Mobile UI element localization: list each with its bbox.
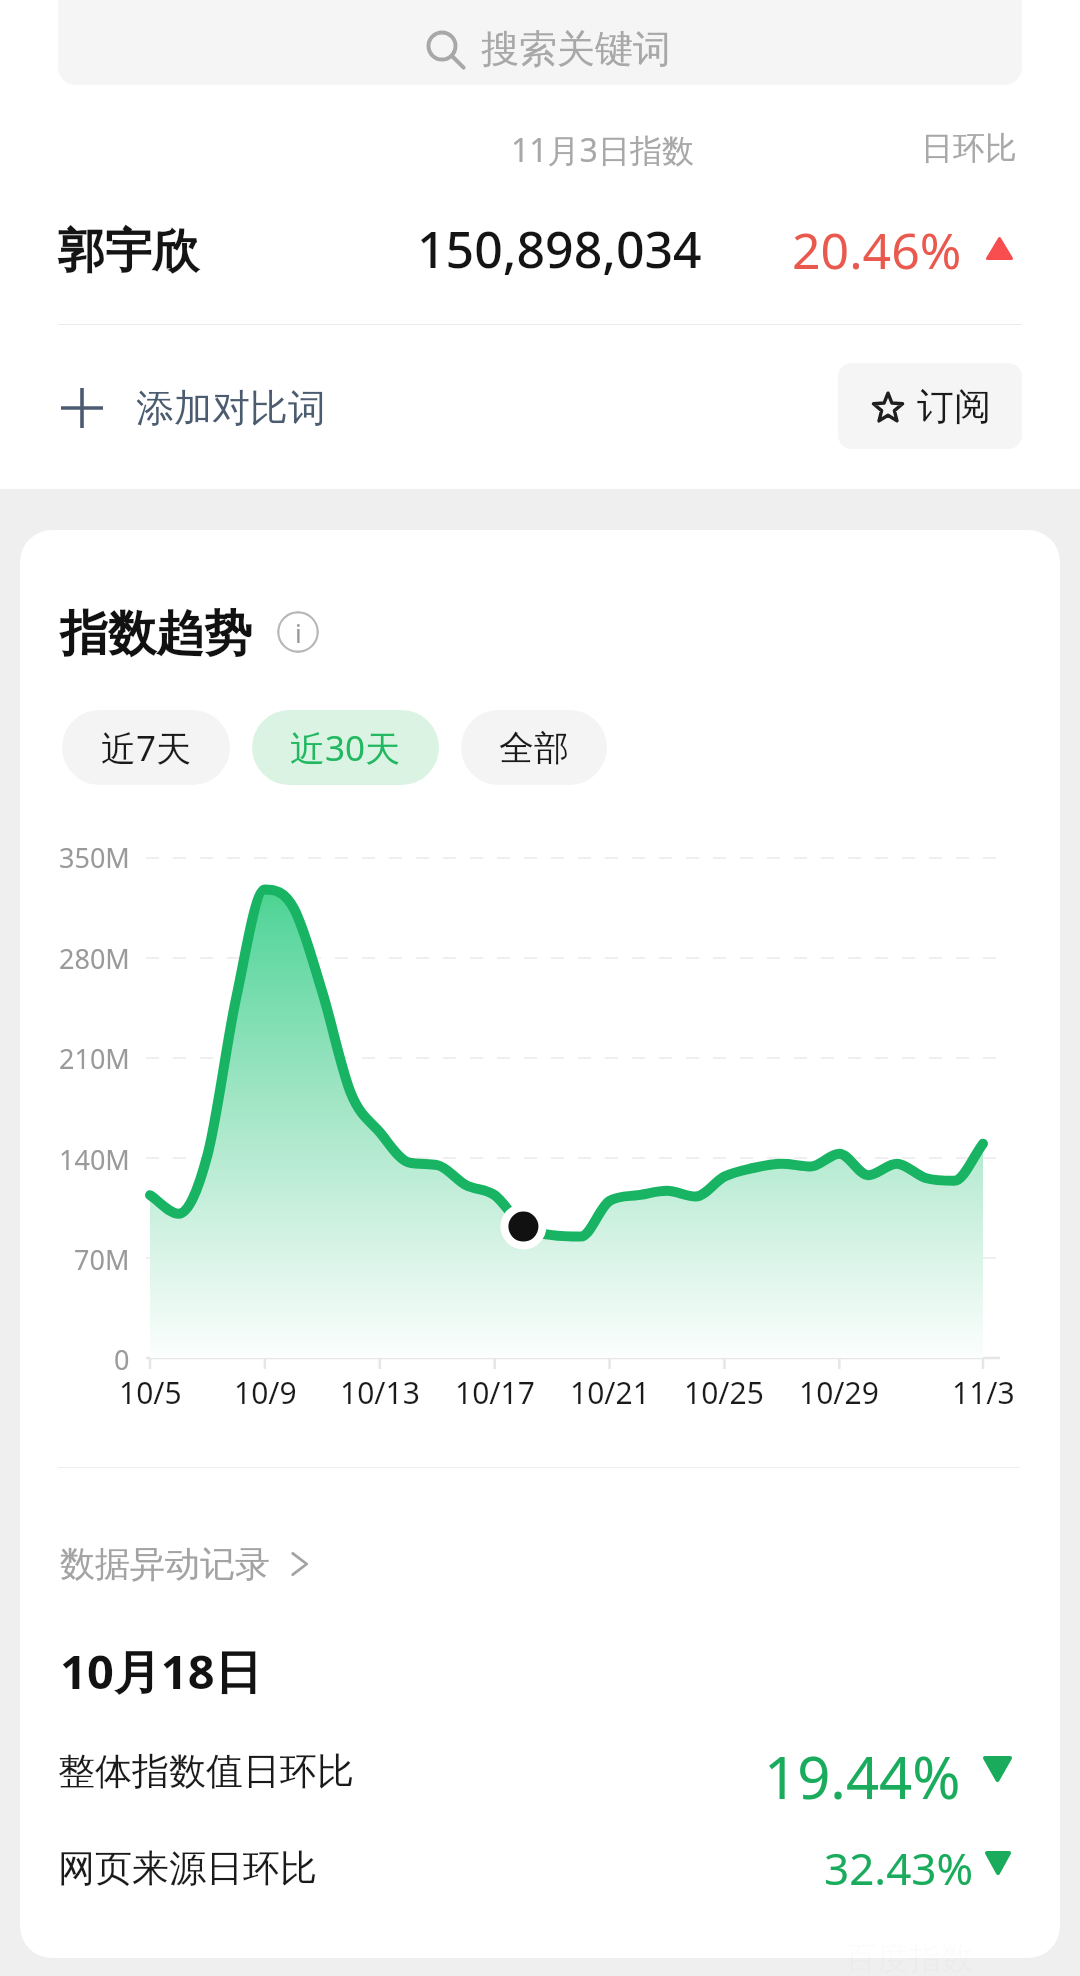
button[interactable]: 整体指数值日环比 19.44%: [58, 1735, 1020, 1807]
staticText: 0: [114, 1341, 130, 1378]
button[interactable]: 近7天: [62, 710, 230, 785]
button[interactable]: 网页来源日环比 32.43%: [58, 1832, 1020, 1902]
staticText: 郭宇欣: [58, 222, 199, 281]
staticText: 70M: [74, 1241, 130, 1278]
staticText: 19.44%: [764, 1737, 961, 1816]
staticText: 全部: [499, 726, 569, 770]
staticText: 32.43%: [824, 1838, 974, 1898]
button[interactable]: 数据异动记录: [60, 1540, 314, 1588]
staticText: 数据异动记录: [60, 1542, 270, 1586]
staticText: 近30天: [290, 724, 401, 772]
staticText: 10/25: [684, 1372, 764, 1412]
staticText: 订阅: [917, 383, 991, 430]
staticText: 10/17: [455, 1372, 535, 1412]
staticText: 11月3日指数: [511, 128, 694, 172]
staticText: 指数趋势: [60, 604, 252, 664]
staticText: 20.46%: [792, 216, 962, 284]
staticText: 11/3: [952, 1372, 1015, 1412]
button[interactable]: Info: [277, 611, 319, 653]
staticText: 百度指数: [845, 1938, 973, 1976]
staticText: 日环比: [921, 128, 1017, 168]
button[interactable]: 添加对比词: [58, 370, 326, 446]
button[interactable]: 近30天: [252, 710, 439, 785]
staticText: 近7天: [101, 724, 192, 772]
staticText: 10/21: [570, 1372, 650, 1412]
staticText: 10/9: [234, 1372, 297, 1412]
button[interactable]: 全部: [461, 710, 607, 785]
staticText: 150,898,034: [417, 215, 702, 283]
staticText: 添加对比词: [136, 384, 326, 432]
staticText: 搜索关键词: [481, 25, 671, 73]
button[interactable]: 搜索关键词: [58, 0, 1022, 85]
staticText: 280M: [59, 940, 130, 977]
staticText: 210M: [59, 1040, 130, 1077]
staticText: 10/29: [799, 1372, 879, 1412]
button[interactable]: 订阅: [838, 363, 1022, 449]
staticText: 整体指数值日环比: [58, 1748, 354, 1795]
staticText: 350M: [59, 839, 130, 876]
staticText: 10/5: [119, 1372, 182, 1412]
staticText: 10/13: [340, 1372, 420, 1412]
staticText: 140M: [59, 1141, 130, 1178]
staticText: i: [295, 615, 302, 650]
staticText: 网页来源日环比: [58, 1845, 317, 1892]
staticText: 10月18日: [60, 1639, 262, 1703]
